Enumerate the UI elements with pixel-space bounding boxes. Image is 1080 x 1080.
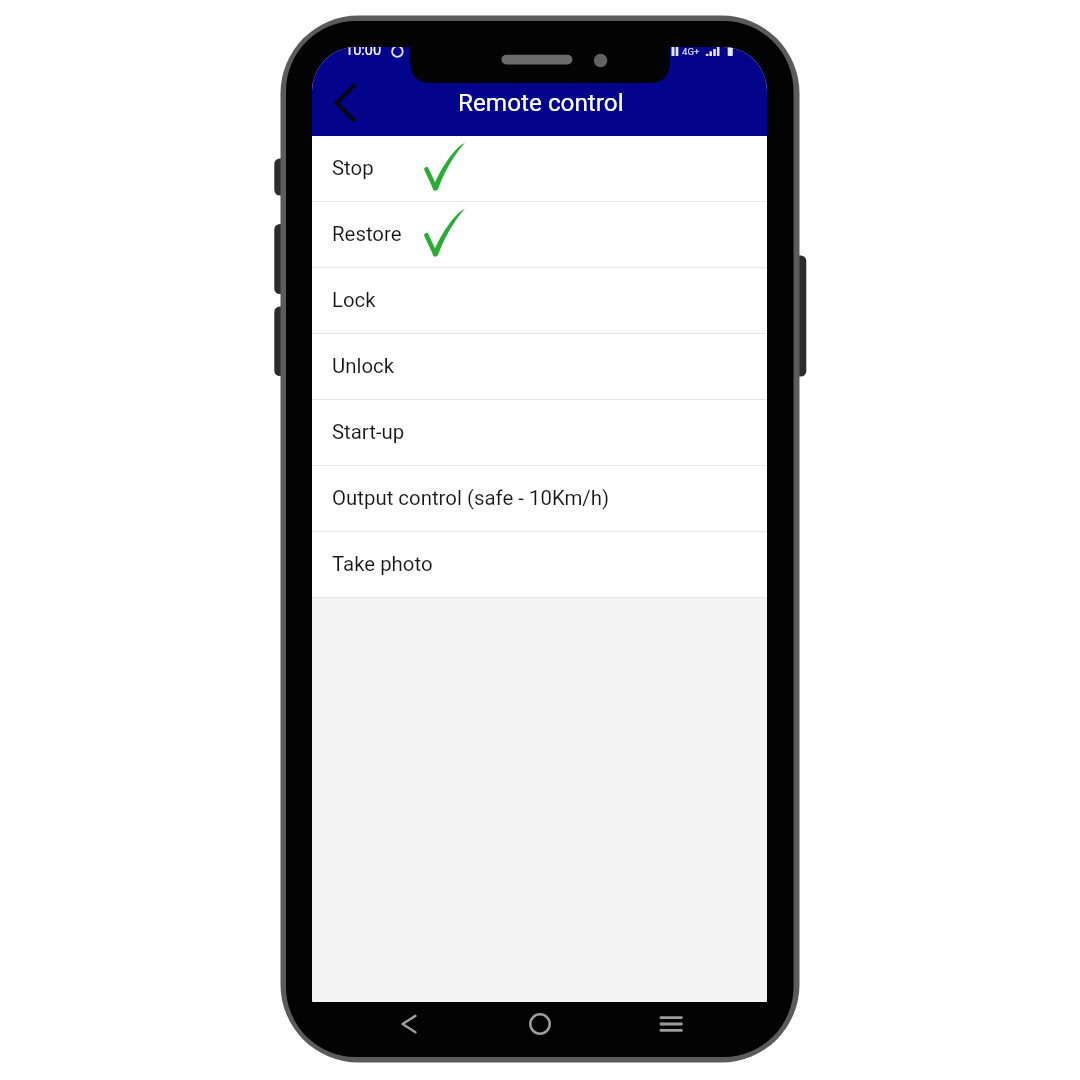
button[interactable]: Output control (safe - 10Km/h)	[312, 466, 767, 532]
button[interactable]: Lock	[312, 268, 767, 334]
button[interactable]: Unlock	[312, 334, 767, 400]
button[interactable]: Back	[396, 1006, 432, 1042]
staticText: Remote control	[458, 88, 624, 116]
button[interactable]: Take photo	[312, 532, 767, 598]
button[interactable]: Recent apps	[653, 1006, 689, 1042]
staticText: Take photo	[332, 552, 433, 576]
staticText: Start-up	[332, 420, 405, 444]
staticText: Lock	[332, 288, 376, 312]
staticText: Restore	[332, 222, 402, 246]
staticText: 10:00	[345, 47, 382, 59]
staticText: Output control (safe - 10Km/h)	[332, 486, 610, 510]
button[interactable]: Stop	[312, 136, 767, 202]
button[interactable]: Restore	[312, 202, 767, 268]
staticText: Unlock	[332, 354, 395, 378]
staticText: 4G+	[682, 47, 700, 57]
button[interactable]: Home	[522, 1006, 558, 1042]
staticText: Stop	[332, 156, 374, 180]
button[interactable]: Start-up	[312, 400, 767, 466]
button[interactable]: Navigate back	[324, 72, 366, 114]
